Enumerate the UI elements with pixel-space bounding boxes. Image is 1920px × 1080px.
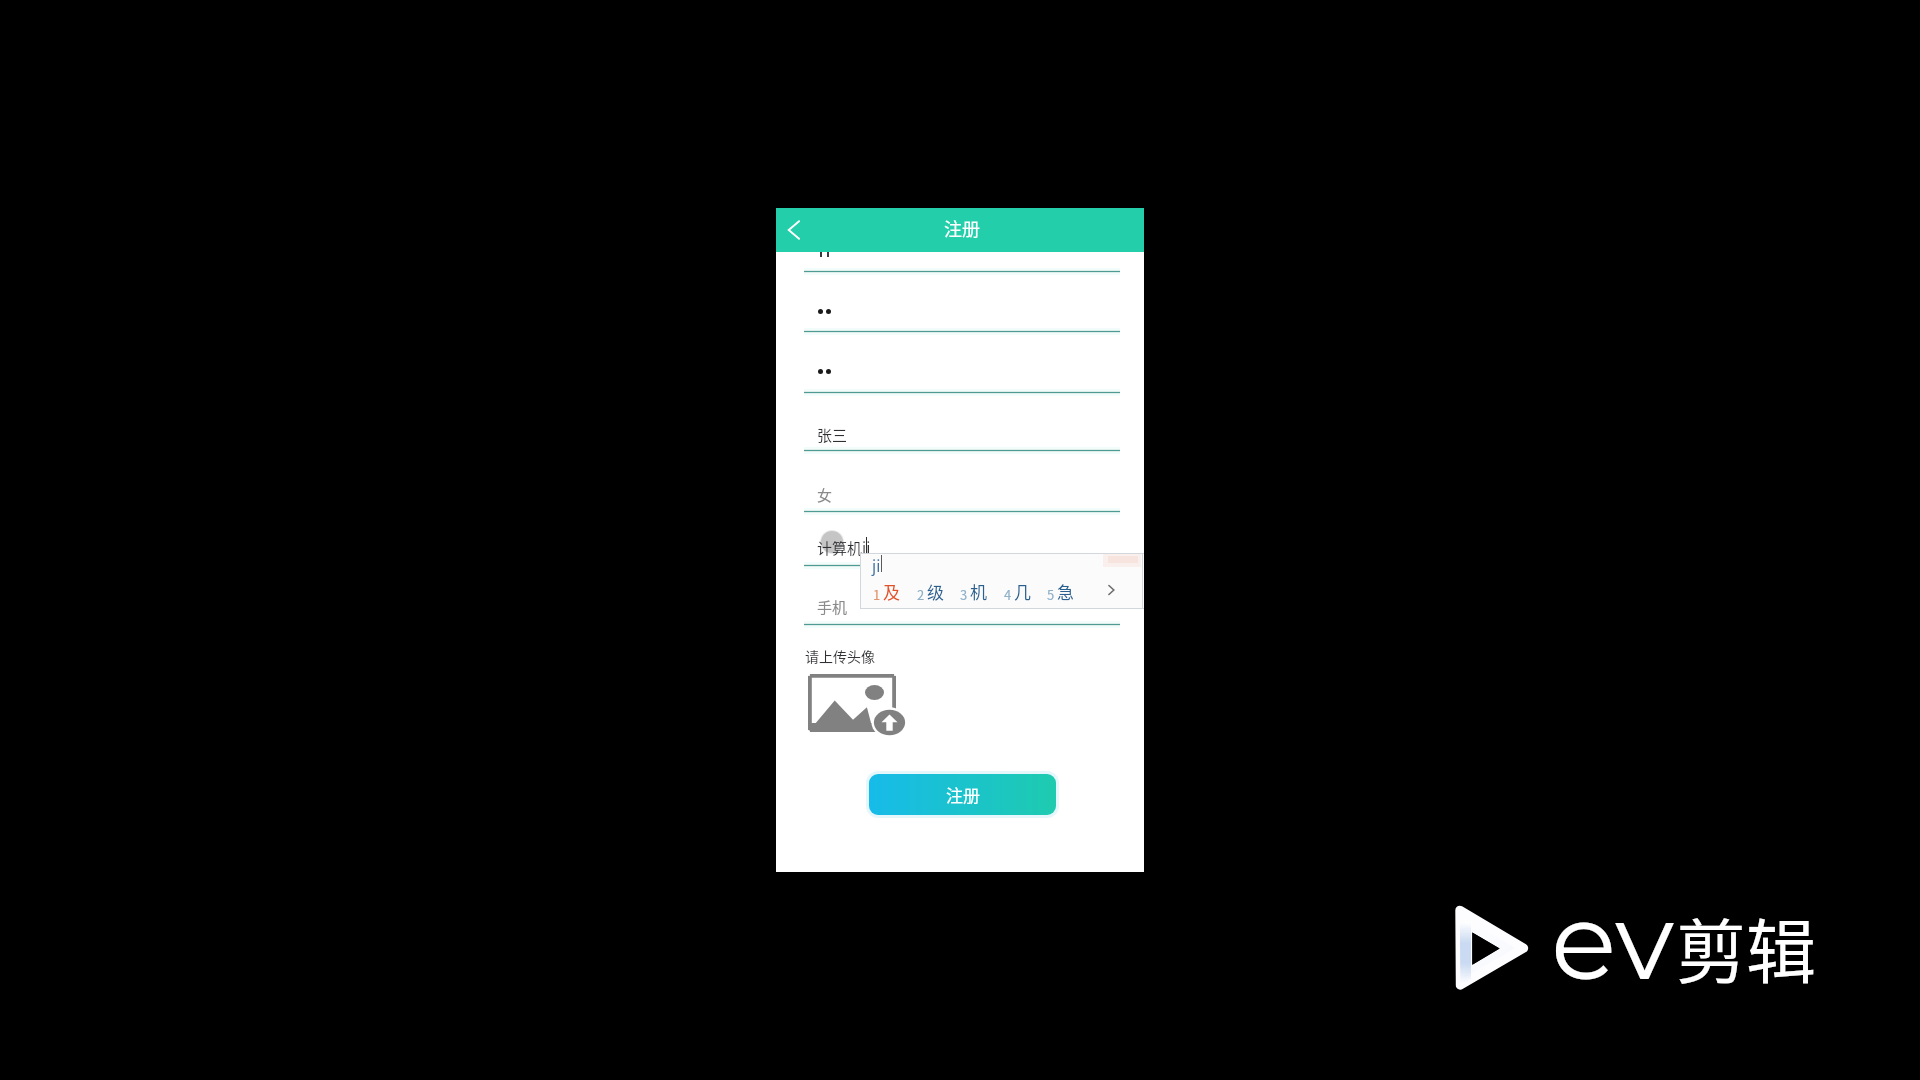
button[interactable]: 注册 — [869, 774, 1056, 815]
staticText: 5 — [1047, 585, 1055, 604]
staticText: 请上传头像 — [805, 646, 875, 666]
button[interactable]: Gender — [776, 450, 1144, 511]
staticText: 注册 — [944, 215, 980, 241]
button[interactable]: Password — [776, 271, 1144, 331]
staticText: ji — [872, 555, 881, 577]
staticText: 剪辑 — [1676, 897, 1816, 998]
staticText: 急 — [1057, 579, 1074, 604]
staticText: 手机 — [817, 596, 848, 618]
button[interactable]: Major — [776, 511, 1144, 565]
staticText: 2 — [917, 585, 925, 604]
staticText: 及 — [883, 579, 900, 604]
button[interactable]: 4 — [1004, 579, 1031, 604]
button[interactable]: Account — [776, 252, 1144, 271]
button[interactable]: Upload avatar — [807, 673, 907, 743]
button[interactable]: Back — [776, 208, 812, 252]
staticText: 1 — [873, 585, 881, 604]
button[interactable]: Name — [776, 392, 1144, 450]
staticText: 张三 — [817, 424, 848, 446]
staticText: 4 — [1004, 585, 1012, 604]
staticText: 计算机ji — [817, 537, 871, 559]
staticText: 注册 — [946, 782, 980, 807]
button[interactable]: 5 — [1047, 579, 1074, 604]
staticText: ev — [1551, 874, 1674, 1006]
button[interactable]: Phone — [776, 565, 1144, 624]
button[interactable]: 2 — [917, 579, 944, 604]
button[interactable]: 3 — [960, 579, 987, 604]
button[interactable]: 1 — [873, 579, 900, 604]
staticText: 女 — [817, 484, 833, 506]
button[interactable]: More candidates — [1100, 579, 1122, 601]
staticText: 几 — [1014, 579, 1031, 604]
button[interactable]: Confirm password — [776, 331, 1144, 392]
staticText: 级 — [927, 579, 944, 604]
staticText: 3 — [960, 585, 968, 604]
staticText: 机 — [970, 579, 987, 604]
